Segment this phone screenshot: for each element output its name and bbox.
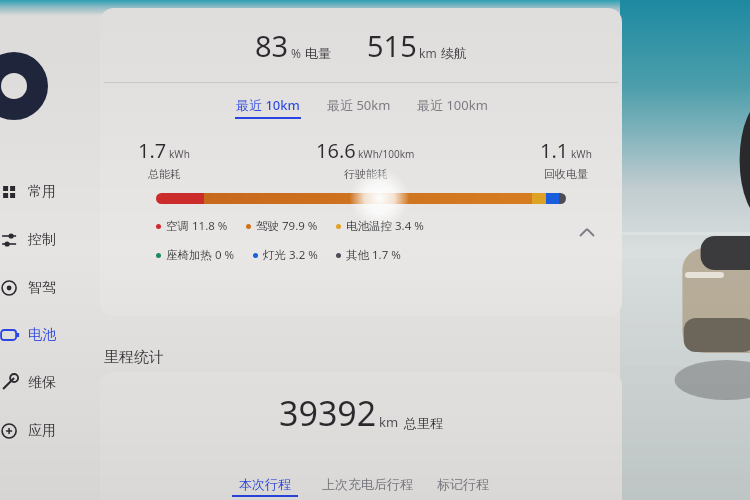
staticText: 续航 (441, 45, 467, 61)
button[interactable]: 空调 11.8 % (156, 218, 228, 234)
staticText: 灯光 3.2 % (263, 247, 318, 263)
staticText: km (419, 45, 437, 61)
staticText: 39392 (279, 390, 377, 436)
staticText: 空调 11.8 % (166, 218, 228, 234)
staticText: 控制 (28, 231, 56, 249)
staticText: 最近 50km (327, 96, 391, 114)
staticText: 行驶能耗 (344, 167, 388, 181)
staticText: 总里程 (404, 415, 443, 431)
staticText: km (379, 413, 399, 431)
staticText: 最近 100km (417, 96, 488, 114)
staticText: 驾驶 79.9 % (256, 218, 318, 234)
staticText: 电池温控 3.4 % (346, 218, 424, 234)
button[interactable]: 标记行程 (435, 474, 491, 499)
staticText: kWh (571, 147, 592, 161)
staticText: 智驾 (28, 279, 56, 297)
staticText: 最近 10km (236, 96, 300, 114)
staticText: 维保 (28, 374, 56, 392)
staticText: 515 (367, 26, 417, 65)
button[interactable]: 座椅加热 0 % (156, 247, 235, 263)
staticText: kWh/100km (358, 147, 415, 161)
staticText: 总能耗 (148, 167, 181, 181)
button[interactable]: 收起 (572, 218, 602, 248)
button[interactable]: 维保 (0, 369, 96, 397)
staticText: 1.7 (138, 137, 167, 164)
staticText: 应用 (28, 422, 56, 440)
button[interactable]: 电池 (0, 321, 96, 349)
staticText: 回收电量 (544, 167, 588, 181)
staticText: 上次充电后行程 (322, 476, 413, 492)
button[interactable]: 电池温控 3.4 % (336, 218, 424, 234)
staticText: 1.1 (540, 137, 569, 164)
button[interactable]: 驾驶 79.9 % (246, 218, 318, 234)
button[interactable]: 最近 50km (325, 94, 393, 121)
staticText: 电池 (28, 326, 56, 344)
staticText: % (291, 45, 301, 61)
staticText: 其他 1.7 % (346, 247, 401, 263)
staticText: 常用 (28, 183, 56, 201)
button[interactable]: 上次充电后行程 (320, 474, 415, 499)
staticText: kWh (169, 147, 190, 161)
staticText: 本次行程 (239, 476, 291, 492)
button[interactable]: 常用 (0, 178, 96, 206)
button[interactable]: 灯光 3.2 % (253, 247, 318, 263)
staticText: 电量 (305, 45, 331, 61)
button[interactable]: 最近 100km (415, 94, 490, 121)
button[interactable]: 控制 (0, 226, 96, 254)
staticText: 里程统计 (104, 348, 164, 367)
button[interactable]: 应用 (0, 417, 96, 445)
staticText: 16.6 (316, 137, 356, 164)
button[interactable]: 智驾 (0, 274, 96, 302)
staticText: 座椅加热 0 % (166, 247, 235, 263)
button[interactable]: 其他 1.7 % (336, 247, 401, 263)
staticText: 83 (255, 26, 289, 65)
button[interactable]: 本次行程 (230, 474, 300, 499)
staticText: 标记行程 (437, 476, 489, 492)
button[interactable]: 最近 10km (233, 94, 303, 121)
